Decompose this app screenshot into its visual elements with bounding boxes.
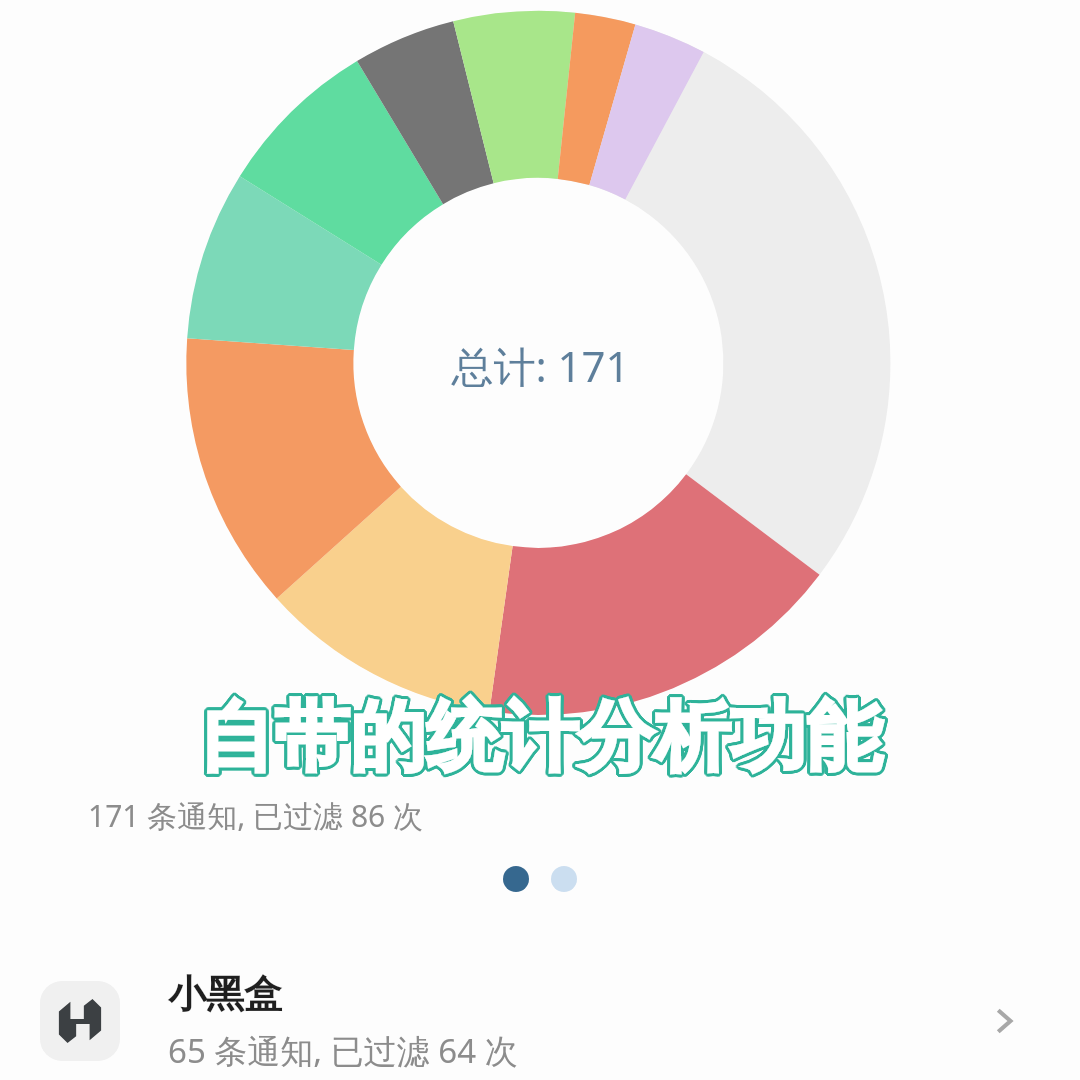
staticText: 自带的统计分析功能	[195, 691, 879, 787]
button[interactable]: 小黑盒	[0, 962, 1080, 1080]
staticText: 自带的统计分析功能	[200, 692, 884, 788]
staticText: 自带的统计分析功能	[197, 693, 881, 789]
staticText: 自带的统计分析功能	[195, 689, 879, 785]
staticText: 自带的统计分析功能	[200, 688, 884, 784]
staticText: 自带的统计分析功能	[197, 687, 881, 783]
button[interactable]: Open 小黑盒 details	[968, 985, 1040, 1057]
staticText: 171 条通知, 已过滤 86 次	[88, 795, 424, 836]
staticText: 自带的统计分析功能	[198, 687, 882, 783]
staticText: 自带的统计分析功能	[201, 689, 885, 785]
staticText: 自带的统计分析功能	[199, 693, 883, 789]
staticText: 自带的统计分析功能	[198, 693, 882, 789]
staticText: 自带的统计分析功能	[201, 690, 885, 786]
staticText: 自带的统计分析功能	[201, 691, 885, 787]
staticText: 65 条通知, 已过滤 64 次	[168, 1028, 518, 1073]
staticText: 自带的统计分析功能	[196, 692, 880, 788]
staticText: 自带的统计分析功能	[195, 690, 879, 786]
staticText: 自带的统计分析功能	[196, 688, 880, 784]
staticText: 总计: 171	[451, 337, 630, 394]
staticText: 自带的统计分析功能	[199, 687, 883, 783]
staticText: 小黑盒	[168, 970, 282, 1018]
staticText: 自带的统计分析功能	[198, 690, 882, 786]
